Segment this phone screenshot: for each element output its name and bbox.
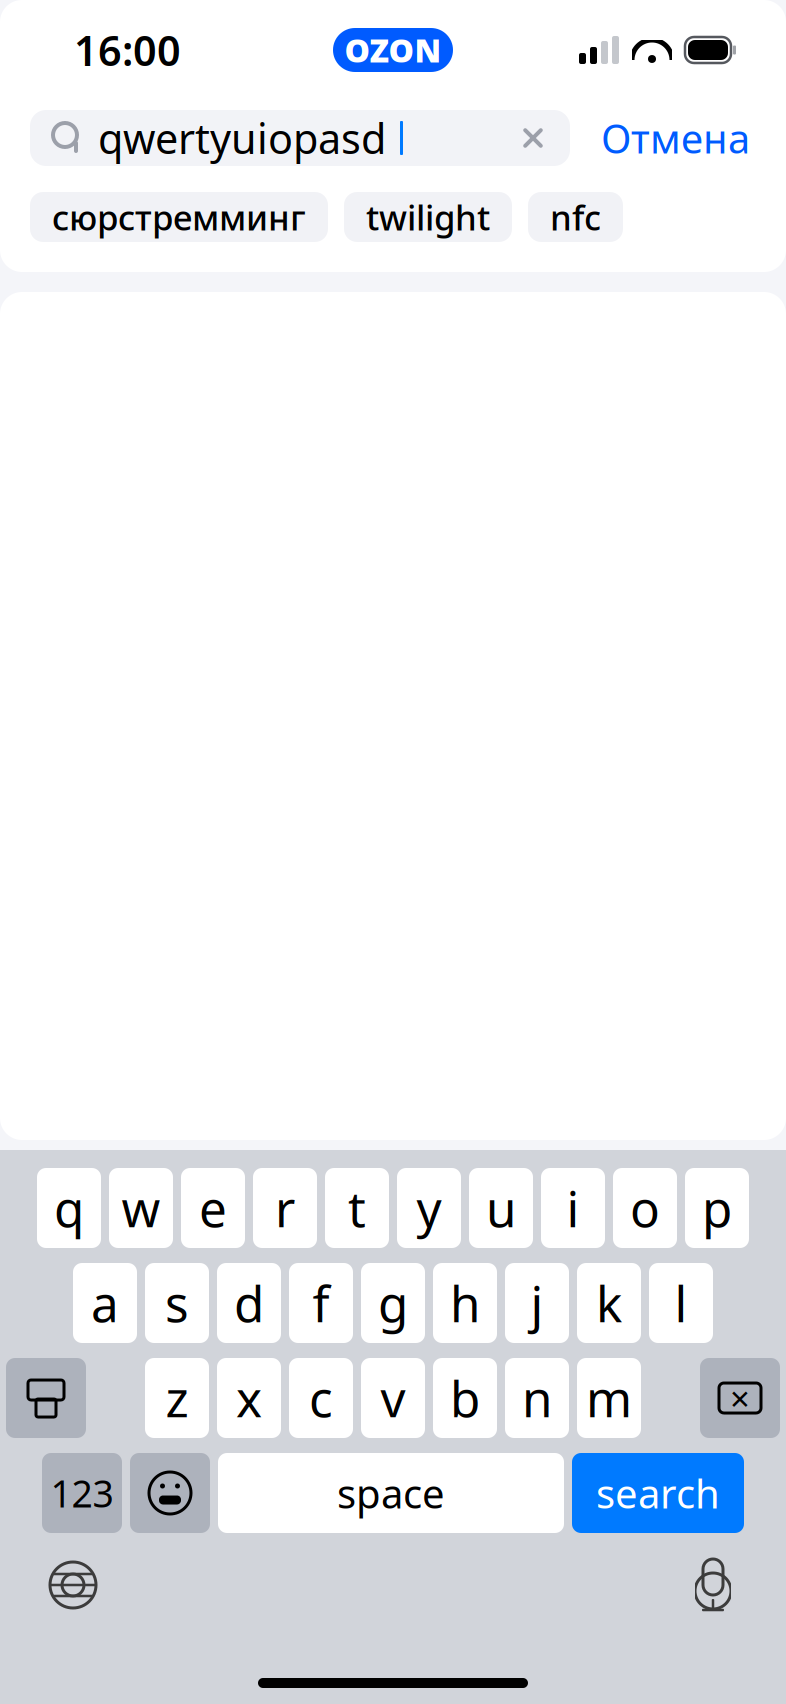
staticText: o bbox=[630, 1175, 660, 1241]
staticText: × bbox=[730, 1375, 750, 1421]
button[interactable]: 123 bbox=[42, 1453, 122, 1533]
staticText: Отмена bbox=[601, 111, 750, 164]
button[interactable]: Dictate bbox=[674, 1543, 752, 1627]
button[interactable]: h bbox=[433, 1263, 497, 1343]
button[interactable]: x bbox=[217, 1358, 281, 1438]
staticText: a bbox=[91, 1270, 119, 1336]
button[interactable]: сюрстремминг bbox=[30, 192, 328, 242]
staticText: k bbox=[596, 1270, 622, 1336]
staticText: m bbox=[586, 1365, 632, 1431]
staticText: OZON bbox=[344, 29, 441, 71]
staticText: q bbox=[54, 1175, 84, 1241]
button[interactable]: Emoji bbox=[130, 1453, 210, 1533]
button[interactable]: search bbox=[572, 1453, 744, 1533]
button[interactable]: k bbox=[577, 1263, 641, 1343]
staticText: x bbox=[236, 1365, 262, 1431]
button[interactable]: q bbox=[37, 1168, 101, 1248]
button[interactable]: z bbox=[145, 1358, 209, 1438]
button[interactable]: j bbox=[505, 1263, 569, 1343]
button[interactable]: nfc bbox=[528, 192, 623, 242]
staticText: g bbox=[378, 1270, 408, 1336]
staticText: f bbox=[312, 1270, 329, 1336]
button[interactable]: n bbox=[505, 1358, 569, 1438]
staticText: b bbox=[450, 1365, 480, 1431]
button[interactable]: Delete bbox=[700, 1358, 780, 1438]
staticText: s bbox=[165, 1270, 189, 1336]
button[interactable]: d bbox=[217, 1263, 281, 1343]
button[interactable]: twilight bbox=[344, 192, 512, 242]
button[interactable]: l bbox=[649, 1263, 713, 1343]
staticText: z bbox=[165, 1365, 188, 1431]
staticText: y bbox=[416, 1175, 441, 1241]
button[interactable]: space bbox=[218, 1453, 564, 1533]
staticText: 123 bbox=[50, 1468, 113, 1518]
staticText: j bbox=[530, 1270, 543, 1336]
staticText: t bbox=[348, 1175, 366, 1241]
staticText: d bbox=[234, 1270, 264, 1336]
button[interactable]: i bbox=[541, 1168, 605, 1248]
button[interactable]: m bbox=[577, 1358, 641, 1438]
staticText: twilight bbox=[366, 194, 490, 240]
staticText: space bbox=[337, 1466, 445, 1519]
staticText: r bbox=[275, 1175, 295, 1241]
staticText: p bbox=[702, 1175, 732, 1241]
button[interactable]: a bbox=[73, 1263, 137, 1343]
staticText: h bbox=[450, 1270, 480, 1336]
staticText: qwertyuiopasd bbox=[98, 111, 386, 165]
button[interactable]: f bbox=[289, 1263, 353, 1343]
button[interactable]: c bbox=[289, 1358, 353, 1438]
staticText: n bbox=[522, 1365, 552, 1431]
staticText: l bbox=[674, 1270, 687, 1336]
staticText: сюрстремминг bbox=[52, 194, 306, 240]
button[interactable]: g bbox=[361, 1263, 425, 1343]
staticText: nfc bbox=[550, 194, 601, 240]
button[interactable]: v bbox=[361, 1358, 425, 1438]
button[interactable]: o bbox=[613, 1168, 677, 1248]
staticText: v bbox=[380, 1365, 405, 1431]
staticText: c bbox=[309, 1365, 333, 1431]
button[interactable]: b bbox=[433, 1358, 497, 1438]
staticText: u bbox=[486, 1175, 516, 1241]
staticText: i bbox=[566, 1175, 579, 1241]
staticText: w bbox=[121, 1175, 160, 1241]
button[interactable]: r bbox=[253, 1168, 317, 1248]
button[interactable]: e bbox=[181, 1168, 245, 1248]
button[interactable]: Shift bbox=[6, 1358, 86, 1438]
button[interactable]: p bbox=[685, 1168, 749, 1248]
button[interactable]: w bbox=[109, 1168, 173, 1248]
staticText: e bbox=[199, 1175, 227, 1241]
button[interactable]: Отмена bbox=[593, 110, 758, 166]
button[interactable]: qwertyuiopasd bbox=[30, 110, 570, 166]
staticText: search bbox=[596, 1466, 720, 1519]
button[interactable]: y bbox=[397, 1168, 461, 1248]
button[interactable]: t bbox=[325, 1168, 389, 1248]
button[interactable]: s bbox=[145, 1263, 209, 1343]
button[interactable]: Next keyboard bbox=[34, 1546, 112, 1624]
staticText: 16:00 bbox=[74, 23, 181, 77]
button[interactable]: u bbox=[469, 1168, 533, 1248]
